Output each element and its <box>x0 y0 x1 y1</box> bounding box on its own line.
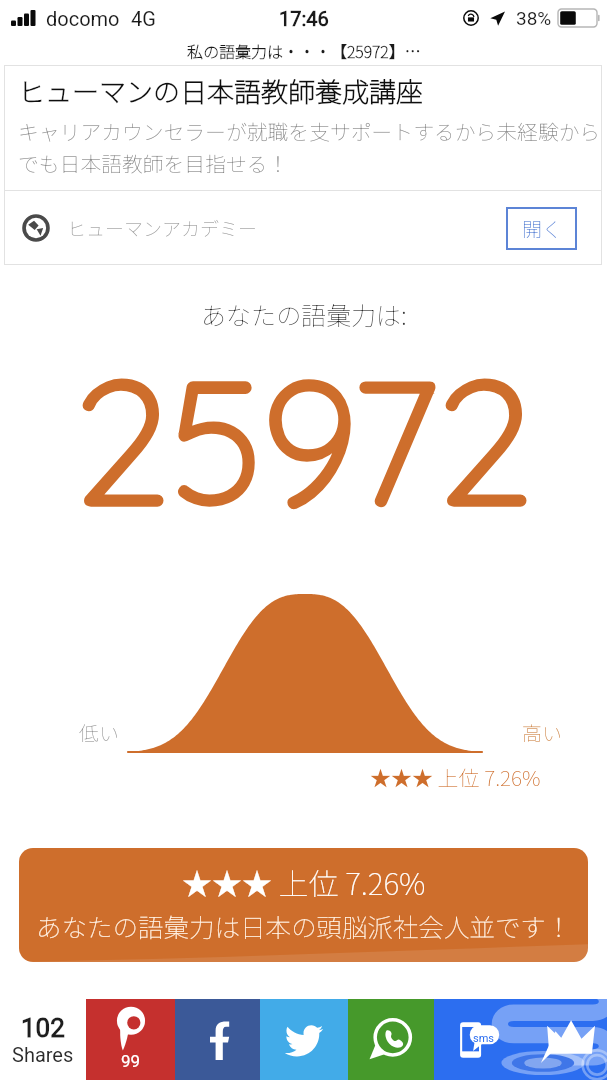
staticText: ヒューマンの日本語教師養成講座 <box>18 71 423 110</box>
staticText: 高い <box>522 718 562 747</box>
staticText: 38% <box>516 7 552 29</box>
staticText: ★★★ 上位 7.26% <box>182 860 426 903</box>
staticText: 25972 <box>75 332 533 547</box>
button[interactable]: Share via SMS <box>434 999 607 1080</box>
button[interactable]: Share on Twitter <box>260 999 348 1080</box>
staticText: あなたの語彙力は日本の頭脳派社会人並です！ <box>36 907 572 944</box>
button[interactable]: Share on Facebook <box>175 999 260 1080</box>
staticText: 4G <box>131 7 156 30</box>
button[interactable]: ヒューマンの日本語教師養成講座 <box>4 65 602 265</box>
button[interactable]: ★★★ 上位 7.26% <box>19 848 588 962</box>
button[interactable]: 開く <box>506 207 577 250</box>
staticText: あなたの語彙力は: <box>201 296 407 332</box>
button[interactable]: Share on WhatsApp <box>348 999 434 1080</box>
staticText: Shares <box>12 1043 74 1066</box>
staticText: sms <box>473 1032 495 1045</box>
staticText: 低い <box>79 718 119 747</box>
staticText: 開く <box>522 214 562 243</box>
staticText: 99 <box>121 1051 141 1071</box>
staticText: 私の語彙力は・・・【25972】… <box>187 39 421 62</box>
staticText: キャリアカウンセラーが就職を支サポートするから未経験からでも日本語教師を目指せる… <box>18 116 602 178</box>
staticText: ★★★ 上位 7.26% <box>370 762 541 792</box>
button[interactable]: Share on Pinterest <box>86 999 175 1080</box>
staticText: 17:46 <box>279 7 329 30</box>
staticText: docomo <box>46 7 120 30</box>
staticText: ヒューマンアカデミー <box>67 214 258 242</box>
staticText: 102 <box>21 1013 65 1043</box>
